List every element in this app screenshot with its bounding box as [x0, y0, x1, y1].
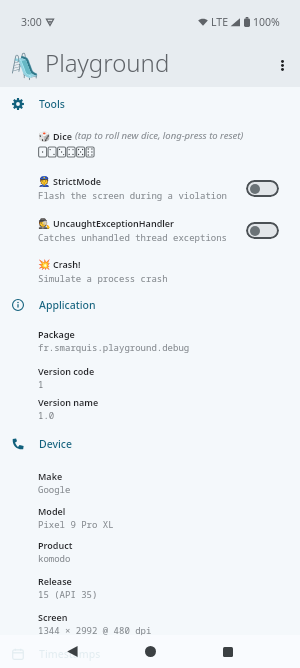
staticText: Google [38, 483, 71, 495]
staticText: Pixel 9 Pro XL [38, 518, 114, 530]
button[interactable]: 💥 [0, 258, 300, 284]
button[interactable]: Application [0, 297, 300, 313]
staticText: Flash the screen during a violation [38, 189, 228, 201]
staticText: Release [38, 575, 72, 587]
button[interactable]: Model [0, 505, 300, 530]
staticText: LTE [211, 15, 228, 29]
staticText: Simulate a process crash [38, 272, 168, 284]
staticText: (tap to roll new dice, long-press to res… [75, 129, 244, 142]
staticText: 1 [38, 378, 44, 390]
staticText: 15 (API 35) [38, 588, 98, 600]
staticText: 🕵️ [38, 218, 51, 230]
staticText: Crash! [53, 258, 81, 270]
button[interactable]: Screen [0, 611, 300, 636]
staticText: 👮 [38, 176, 51, 188]
button[interactable]: Back [33, 635, 111, 668]
button[interactable]: Home [111, 635, 189, 668]
button[interactable]: Tools [0, 96, 300, 112]
staticText: Package [38, 328, 75, 340]
staticText: Screen [38, 611, 68, 623]
button[interactable]: 👮 [0, 175, 300, 201]
staticText: Device [39, 437, 73, 451]
button[interactable]: 🎲 [0, 129, 300, 157]
staticText: fr.smarquis.playground.debug [38, 341, 190, 353]
button[interactable]: Timestamps [0, 646, 300, 662]
staticText: Version name [38, 396, 99, 408]
button[interactable]: Version code [0, 365, 300, 390]
button[interactable]: Package [0, 328, 300, 353]
staticText: Catches unhandled thread exceptions [38, 231, 228, 243]
button[interactable]: Device [0, 436, 300, 452]
staticText: Make [38, 470, 63, 482]
staticText: Timestamps [39, 647, 101, 661]
button[interactable]: Version name [0, 396, 300, 421]
button[interactable]: Release [0, 575, 300, 600]
staticText: 🛝 [9, 52, 41, 81]
button[interactable]: Product [0, 539, 300, 564]
staticText: 100% [253, 15, 280, 29]
staticText: UncaughtExceptionHandler [53, 217, 174, 229]
button[interactable] [246, 222, 279, 239]
staticText: 1344 × 2992 @ 480 dpi [38, 624, 152, 636]
staticText: Version code [38, 365, 95, 377]
staticText: Product [38, 539, 73, 551]
staticText: 1.0 [38, 409, 55, 421]
button[interactable]: 🕵️ [0, 217, 300, 243]
staticText: 🎲 [38, 131, 51, 143]
staticText: komodo [38, 552, 71, 564]
staticText: Model [38, 505, 66, 517]
staticText: StrictMode [53, 175, 102, 187]
staticText: Dice [53, 130, 72, 142]
staticText: 💥 [38, 259, 51, 271]
staticText: 3:00 [21, 15, 42, 29]
staticText: Application [39, 298, 96, 312]
button[interactable]: Recent apps [189, 635, 267, 668]
button[interactable]: More options [266, 49, 298, 81]
staticText: Playground [45, 46, 170, 79]
button[interactable]: Make [0, 470, 300, 495]
staticText: Tools [39, 97, 65, 111]
button[interactable] [246, 180, 279, 197]
